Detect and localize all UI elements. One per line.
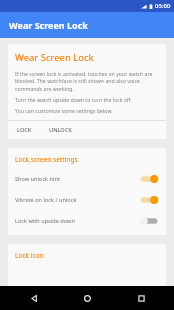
staticText: Wear Screen Lock [15, 51, 94, 64]
button[interactable]: Lock with upside down [8, 210, 166, 231]
staticText: Lock icon [15, 251, 44, 260]
button[interactable]: UNLOCK [45, 123, 76, 137]
staticText: UNLOCK [49, 126, 72, 134]
button[interactable]: Show unlock hint [8, 168, 166, 189]
other: Disabled [138, 215, 160, 227]
staticText: Vibrate on lock / unlock [15, 196, 138, 204]
button[interactable]: Vibrate on lock / unlock [8, 189, 166, 210]
button[interactable]: Recent apps [121, 286, 161, 310]
staticText: If the screen lock is activated, touches… [15, 70, 159, 92]
staticText: Wear Screen Lock [9, 19, 88, 31]
staticText: 05:00 [155, 2, 171, 10]
staticText: Show unlock hint [15, 175, 138, 183]
staticText: Lock screen settings [15, 155, 78, 164]
other: Enabled [138, 173, 160, 185]
staticText: Turn the watch upside down to turn the l… [15, 96, 132, 103]
button[interactable]: Home [67, 286, 107, 310]
staticText: Lock with upside down [15, 217, 138, 225]
button[interactable]: LOCK [13, 123, 36, 137]
other: Enabled [138, 194, 160, 206]
staticText: LOCK [17, 126, 32, 134]
button[interactable]: Back [14, 286, 54, 310]
staticText: You can customize some settings below. [15, 107, 113, 114]
